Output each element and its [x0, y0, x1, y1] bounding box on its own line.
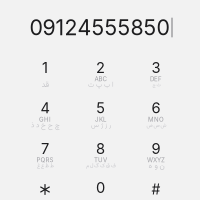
staticText: 9	[151, 140, 160, 157]
button[interactable]: 6	[128, 96, 183, 136]
staticText: 0	[96, 179, 105, 196]
staticText: 5	[96, 99, 105, 117]
button[interactable]: 5	[73, 96, 128, 136]
button[interactable]: Star	[17, 176, 72, 200]
staticText: 6	[151, 99, 160, 117]
staticText: 4	[40, 99, 49, 117]
button[interactable]: 1	[17, 56, 72, 96]
staticText: ا ب پ ت	[87, 80, 113, 90]
button[interactable]: #	[128, 176, 183, 200]
staticText: ن و ه	[148, 160, 164, 172]
staticText: MNO	[148, 116, 164, 123]
staticText: ر ز ژ س	[90, 120, 110, 131]
staticText: 09124555850	[29, 15, 169, 40]
button[interactable]: 8	[73, 137, 128, 177]
staticText: ف ق ک گ ل م	[85, 162, 115, 170]
button[interactable]: 2	[73, 56, 128, 96]
staticText: WXYZ	[147, 156, 165, 164]
staticText: چ ح خ د ذ	[30, 120, 59, 131]
staticText: ث ج	[152, 81, 160, 89]
staticText: ش ص ض	[146, 121, 166, 129]
staticText: ABC	[94, 75, 106, 83]
staticText: ط ظ ع غ	[36, 162, 53, 170]
staticText: GHI	[39, 116, 51, 123]
staticText: 1	[42, 59, 48, 76]
staticText: PQRS	[36, 156, 53, 164]
staticText: JKL	[95, 116, 106, 123]
staticText: DEF	[150, 75, 162, 83]
staticText: #	[151, 181, 160, 198]
staticText: 8	[96, 140, 105, 157]
button[interactable]: 9	[128, 137, 183, 177]
button[interactable]: 7	[17, 137, 72, 177]
staticText: TUV	[94, 156, 107, 164]
staticText: قد	[41, 79, 49, 91]
staticText: 2	[96, 59, 105, 76]
staticText: 3	[151, 59, 160, 76]
button[interactable]: 3	[128, 56, 183, 96]
staticText: 7	[41, 140, 49, 157]
button[interactable]: 0	[73, 176, 128, 200]
button[interactable]: 4	[17, 96, 72, 136]
